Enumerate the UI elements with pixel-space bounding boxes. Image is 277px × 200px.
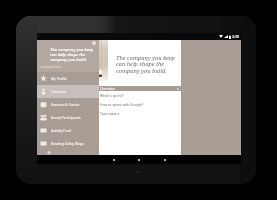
staticText: My Profile bbox=[51, 76, 67, 81]
staticText: Ready Participants bbox=[51, 115, 81, 120]
button[interactable]: Activity Feed bbox=[37, 124, 99, 137]
staticText: Team basics bbox=[100, 111, 120, 116]
staticText: How to sprint with Google? bbox=[100, 102, 144, 107]
staticText: user@gmail.com bbox=[39, 65, 62, 69]
button[interactable]: Team basics bbox=[37, 109, 181, 118]
button[interactable]: Ready Participants bbox=[37, 111, 99, 124]
button[interactable]: Reading & Key Blogs bbox=[37, 137, 99, 150]
staticText: Sessions & Events bbox=[51, 102, 80, 107]
staticText: Reading & Key Blogs bbox=[51, 141, 84, 146]
staticText: 2:30 bbox=[232, 34, 240, 39]
staticText: The company you keep can help shape the … bbox=[50, 47, 94, 62]
button[interactable]: Back bbox=[108, 155, 120, 164]
button[interactable]: My Profile bbox=[37, 72, 99, 85]
button[interactable]: Account bbox=[92, 41, 96, 45]
button[interactable]: Home bbox=[133, 155, 145, 164]
staticText: Activity Feed bbox=[51, 128, 71, 133]
button[interactable]: Overview bbox=[37, 85, 99, 98]
staticText: What is sprint? bbox=[100, 93, 124, 98]
staticText: Overview bbox=[100, 86, 115, 91]
staticText: The company you keep can help shape the … bbox=[116, 54, 175, 75]
staticText: Overview bbox=[51, 89, 66, 94]
button[interactable]: Recents bbox=[159, 155, 171, 164]
button[interactable]: Sessions & Events bbox=[37, 98, 99, 111]
button[interactable]: What is sprint? bbox=[37, 91, 181, 100]
button[interactable]: How to sprint with Google? bbox=[37, 100, 181, 109]
